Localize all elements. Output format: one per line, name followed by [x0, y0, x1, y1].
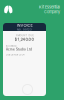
- staticText: Kit Essential: [39, 5, 60, 9]
- staticText: No. 00123: [17, 28, 32, 31]
- staticText: $1,240.00: [14, 37, 34, 42]
- staticText: Company: [44, 9, 60, 14]
- staticText: Billed to: [6, 45, 16, 48]
- button[interactable]: Brand logo: [4, 5, 13, 14]
- staticText: INVOICE: [16, 23, 32, 28]
- staticText: AMOUNT DUE: [15, 34, 33, 37]
- staticText: Due 28 Nov 2024: [6, 53, 25, 56]
- staticText: Acme Studio Ltd: [6, 48, 32, 51]
